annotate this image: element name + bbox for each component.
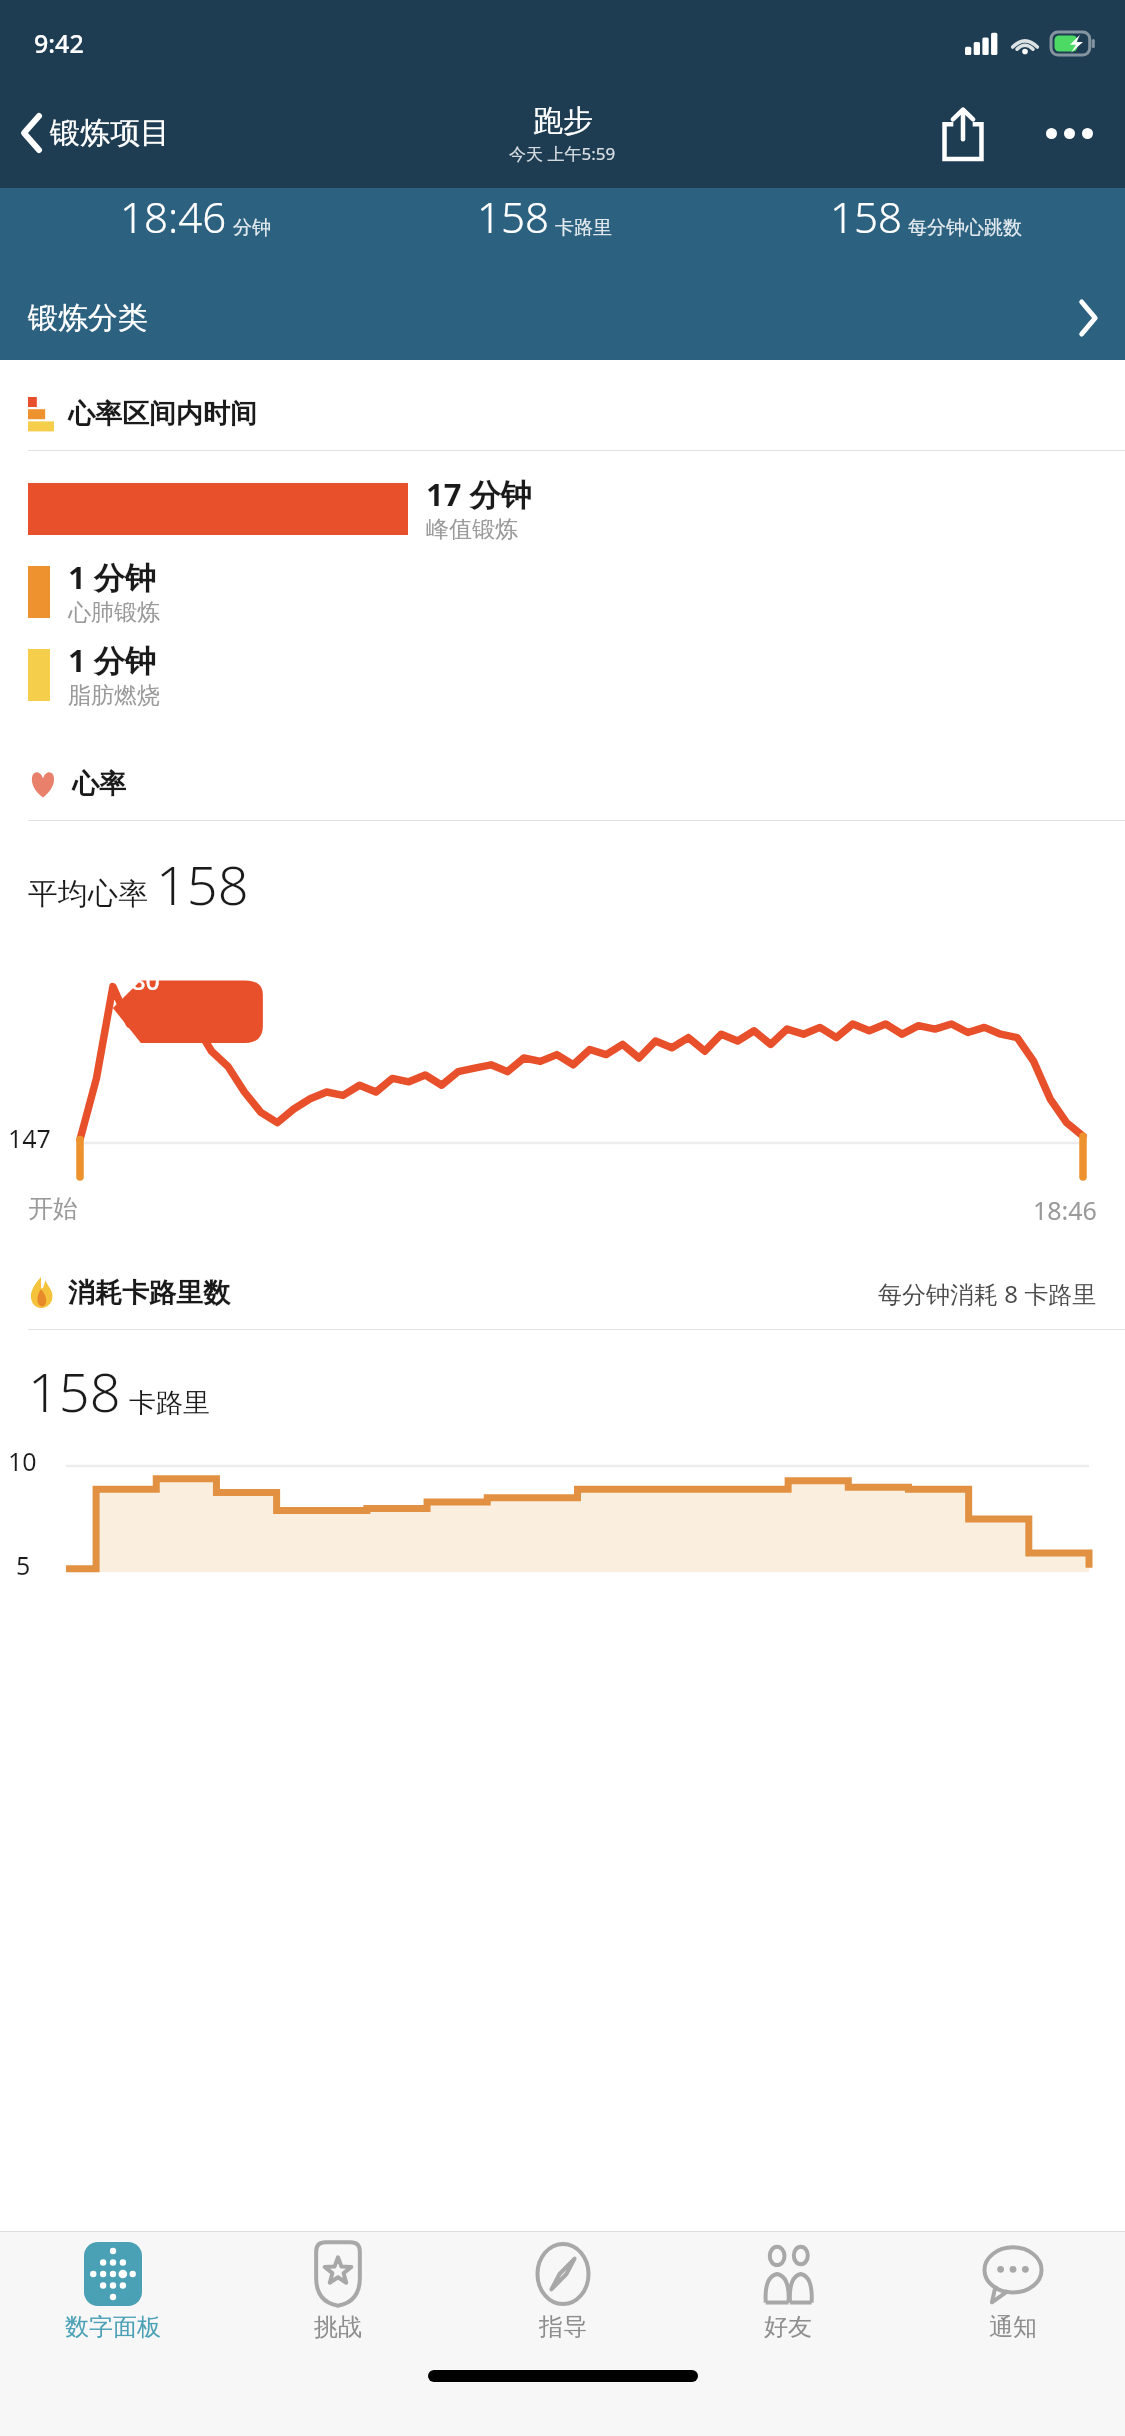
staticText: 18:46 (1033, 1193, 1097, 1227)
staticText: 今天 上午5:59 (509, 142, 616, 165)
staticText: 平均心率 (28, 875, 148, 913)
staticText: 180 (117, 963, 160, 997)
staticText: 心率 (72, 767, 126, 801)
button[interactable]: Share (933, 99, 993, 167)
staticText: 心率区间内时间 (68, 397, 257, 431)
staticText: 17 分钟 (426, 473, 532, 515)
staticText: 峰值锻炼 (426, 515, 518, 544)
staticText: 心肺锻炼 (68, 598, 160, 627)
staticText: 数字面板 (65, 2312, 161, 2342)
button[interactable]: 锻炼分类 (0, 276, 1125, 360)
button[interactable]: 通知 (900, 2234, 1125, 2348)
staticText: 每分钟消耗 8 卡路里 (878, 1277, 1097, 1310)
staticText: 158 (156, 847, 249, 921)
staticText: 每分钟心跳数 (908, 216, 1022, 240)
staticText: 卡路里 (129, 1386, 210, 1420)
staticText: 10 (8, 1444, 37, 1478)
staticText: 脂肪燃烧 (68, 681, 160, 710)
button[interactable]: More options (1036, 118, 1103, 149)
staticText: 147 (8, 1121, 51, 1155)
staticText: 挑战 (314, 2312, 362, 2342)
staticText: 锻炼分类 (28, 299, 148, 337)
staticText: 开始 (28, 1193, 78, 1224)
staticText: 1 分钟 (68, 639, 156, 681)
button[interactable]: 数字面板 (0, 2234, 225, 2348)
staticText: 消耗卡路里数 (68, 1276, 230, 1310)
staticText: 跑步 (533, 102, 593, 140)
button[interactable]: 锻炼项目 (16, 106, 176, 160)
staticText: 158 (830, 188, 902, 245)
staticText: 158 (28, 1354, 121, 1428)
button[interactable]: 好友 (675, 2234, 900, 2348)
staticText: 9:42 (34, 26, 84, 60)
staticText: 158 (477, 188, 549, 245)
staticText: 1 分钟 (68, 556, 156, 598)
button[interactable]: 挑战 (225, 2234, 450, 2348)
staticText: 通知 (989, 2312, 1037, 2342)
staticText: 指导 (539, 2312, 587, 2342)
staticText: 锻炼项目 (50, 114, 170, 152)
staticText: 卡路里 (555, 216, 612, 240)
button[interactable]: 指导 (450, 2234, 675, 2348)
staticText: 分钟 (233, 216, 271, 240)
staticText: 好友 (764, 2312, 812, 2342)
staticText: 18:46 (120, 188, 227, 245)
staticText: 5 (16, 1548, 31, 1582)
